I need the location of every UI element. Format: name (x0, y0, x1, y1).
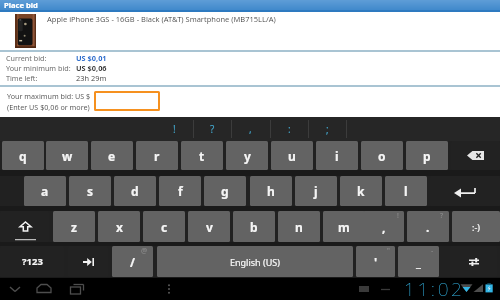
button[interactable]: , (363, 211, 404, 242)
button[interactable]: / (112, 246, 153, 277)
staticText: e (108, 148, 116, 164)
staticText: Your minimum bid: (6, 63, 71, 73)
staticText: z (71, 219, 77, 235)
button[interactable]: z (53, 211, 95, 242)
button[interactable]: w (46, 141, 88, 170)
button[interactable]: f (159, 176, 201, 206)
staticText: t (199, 148, 205, 164)
staticText: h (267, 183, 275, 199)
button[interactable]: u (271, 141, 313, 170)
staticText: ?123 (22, 255, 43, 268)
staticText: - (431, 246, 434, 256)
button[interactable]: q (2, 141, 44, 170)
staticText: Apple iPhone 3GS - 16GB - Black (AT&T) S… (47, 14, 276, 24)
staticText: / (130, 254, 135, 270)
staticText: u (288, 148, 296, 164)
button[interactable] (94, 91, 160, 111)
button[interactable]: _ (398, 246, 439, 277)
staticText: m (338, 219, 350, 235)
button[interactable]: Shift (0, 211, 49, 242)
button[interactable]: p (406, 141, 448, 170)
button[interactable]: Enter (430, 176, 500, 206)
button[interactable]: b (233, 211, 275, 242)
button[interactable]: d (114, 176, 156, 206)
button[interactable]: m (323, 211, 365, 242)
button[interactable]: ?123 (0, 246, 64, 277)
button[interactable]: :-) (452, 211, 500, 242)
button[interactable]: , (231, 117, 269, 141)
button[interactable]: o (361, 141, 403, 170)
button[interactable]: Input settings (450, 246, 497, 277)
button[interactable]: g (204, 176, 246, 206)
button[interactable]: i (316, 141, 358, 170)
staticText: c (161, 219, 168, 235)
button[interactable]: s (69, 176, 111, 206)
button[interactable]: h (250, 176, 292, 206)
button[interactable]: a (24, 176, 66, 206)
button[interactable]: : (270, 117, 308, 141)
staticText: ' (374, 254, 378, 270)
button[interactable]: ; (308, 117, 346, 141)
button[interactable]: l (385, 176, 427, 206)
staticText: n (295, 219, 303, 235)
button[interactable]: Home (36, 282, 52, 296)
staticText: s (87, 183, 94, 199)
button[interactable]: c (143, 211, 185, 242)
staticText: x (116, 219, 123, 235)
staticText: , (249, 122, 252, 136)
button[interactable]: v (188, 211, 230, 242)
button[interactable]: t (181, 141, 223, 170)
other: Enter (454, 186, 476, 197)
staticText: d (131, 183, 139, 199)
button[interactable]: e (91, 141, 133, 170)
button[interactable]: More options (161, 282, 177, 296)
button[interactable]: Place bid (0, 0, 500, 10)
staticText: Current bid: (6, 53, 47, 63)
staticText: , (382, 219, 386, 235)
staticText: Place bid (4, 0, 38, 10)
staticText: a (41, 183, 49, 199)
button[interactable]: Hide keyboard (7, 282, 23, 296)
button[interactable]: ! (155, 117, 193, 141)
button[interactable]: ' (356, 246, 395, 277)
button[interactable]: English (US) (157, 246, 353, 277)
button[interactable]: r (136, 141, 178, 170)
staticText: : (288, 122, 291, 136)
staticText: k (357, 183, 365, 199)
staticText: ; (326, 122, 329, 136)
staticText: r (154, 148, 160, 164)
staticText: @ (141, 246, 148, 256)
staticText: 11:02 (404, 276, 465, 298)
staticText: ! (397, 211, 399, 221)
button[interactable]: y (226, 141, 268, 170)
staticText: . (426, 219, 430, 235)
staticText: b (250, 219, 258, 235)
other: Tab (83, 258, 94, 266)
button[interactable]: Tab (68, 246, 108, 277)
staticText: US $0,01 (76, 53, 107, 63)
button[interactable]: x (98, 211, 140, 242)
staticText: l (404, 183, 408, 199)
staticText: 23h 29m (76, 73, 107, 83)
button[interactable]: n (278, 211, 320, 242)
staticText: p (423, 148, 431, 164)
staticText: i (335, 148, 339, 164)
button[interactable]: . (407, 211, 449, 242)
other: Backspace (467, 151, 484, 160)
staticText: v (206, 219, 213, 235)
staticText: _ (416, 254, 421, 270)
button[interactable]: ? (193, 117, 231, 141)
staticText: f (178, 183, 183, 199)
staticText: " (387, 246, 390, 256)
staticText: ? (440, 211, 444, 221)
button[interactable]: k (340, 176, 382, 206)
staticText: j (314, 183, 318, 199)
staticText: w (62, 148, 73, 164)
button[interactable]: Backspace (451, 141, 500, 170)
staticText: ? (210, 122, 215, 136)
other: Input settings (469, 258, 479, 266)
button[interactable]: j (295, 176, 337, 206)
button[interactable]: Recent apps (69, 282, 85, 296)
staticText: ! (173, 122, 176, 136)
staticText: q (19, 148, 27, 164)
